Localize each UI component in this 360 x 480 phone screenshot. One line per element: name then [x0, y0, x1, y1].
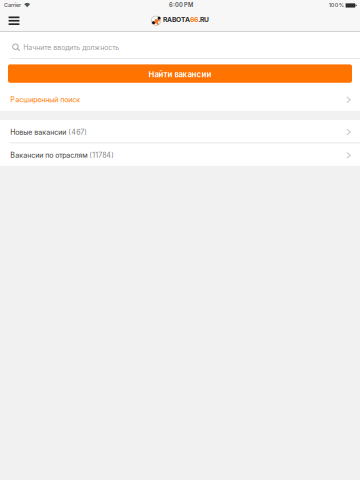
staticText: Carrier — [4, 2, 21, 8]
staticText: .RU — [198, 15, 209, 24]
staticText: 66 — [190, 15, 198, 24]
staticText: Расширенный поиск — [10, 95, 80, 104]
staticText: (11784) — [87, 151, 114, 159]
button[interactable]: Вакансии по отраслям — [0, 143, 360, 166]
button[interactable]: Новые вакансии — [0, 120, 360, 143]
staticText: (467) — [66, 128, 87, 136]
staticText: RABOTA — [163, 15, 190, 24]
staticText: Найти вакансии — [148, 70, 211, 79]
staticText: 100% — [329, 2, 344, 8]
staticText: Новые вакансии — [10, 128, 66, 136]
staticText: Вакансии по отраслям — [10, 151, 87, 159]
button[interactable]: Расширенный поиск — [0, 89, 360, 111]
staticText: Начните вводить должность — [23, 43, 119, 52]
staticText: 6:00 PM — [169, 1, 193, 8]
button[interactable]: Найти вакансии — [0, 59, 360, 89]
button[interactable]: Menu — [0, 10, 28, 31]
